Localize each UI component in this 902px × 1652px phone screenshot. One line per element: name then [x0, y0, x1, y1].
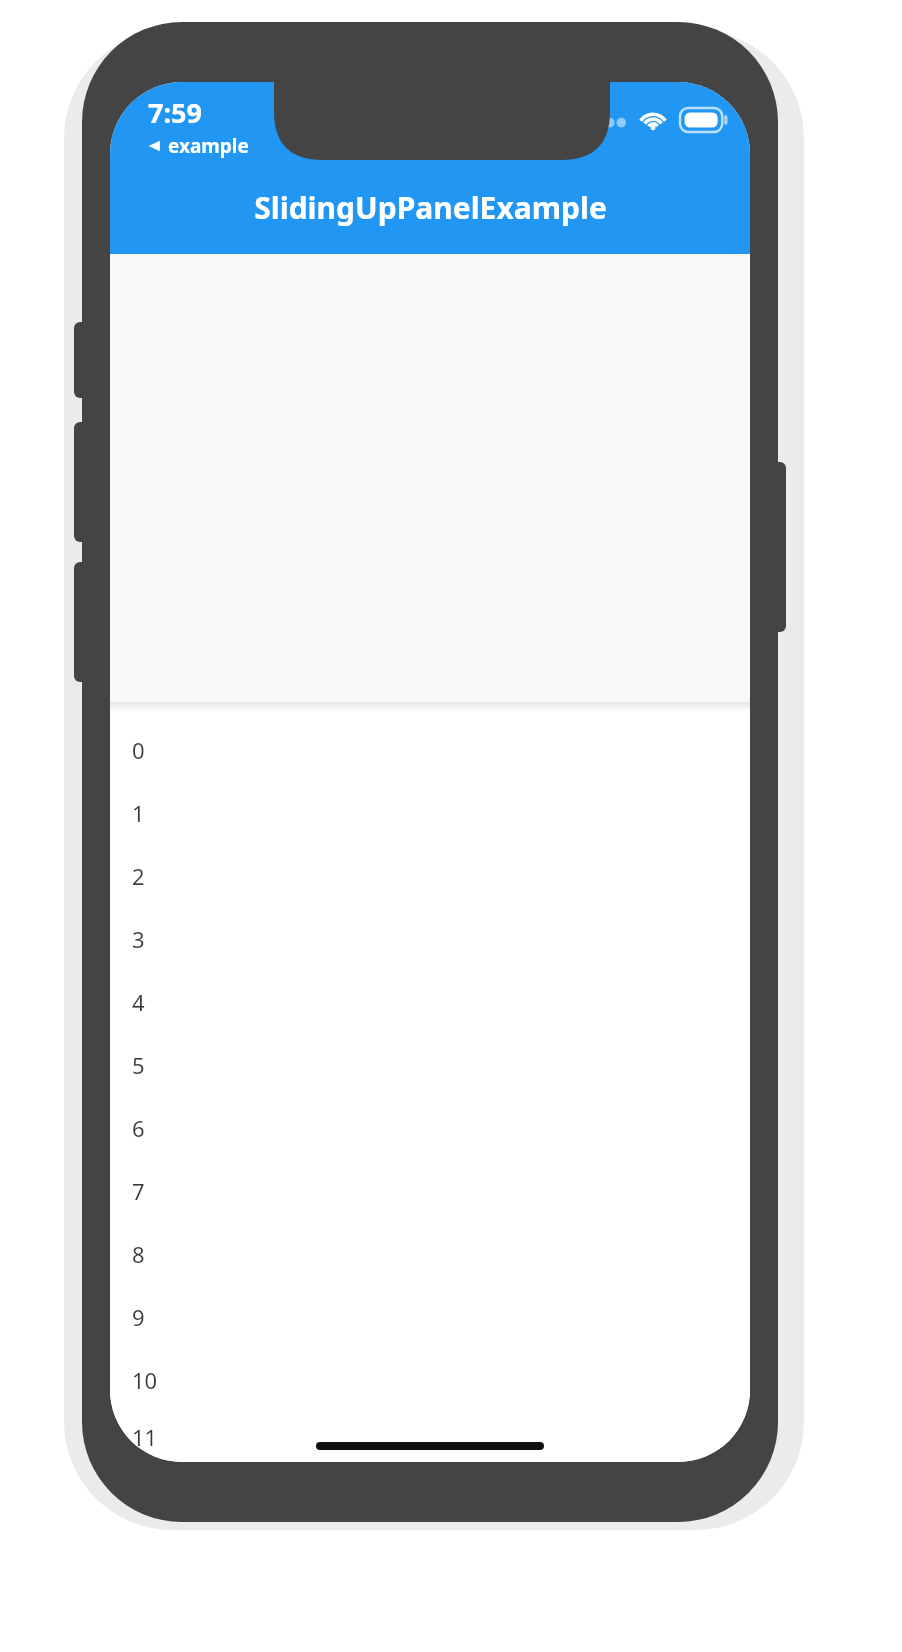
other: Home indicator [316, 1442, 544, 1450]
staticText: 0 [132, 735, 145, 765]
button[interactable]: 7 [110, 1159, 750, 1222]
staticText: 9 [132, 1302, 145, 1332]
staticText: 7:59 [148, 94, 202, 131]
button[interactable]: 6 [110, 1096, 750, 1159]
staticText: 2 [132, 861, 145, 891]
staticText: 8 [132, 1239, 145, 1269]
staticText: 7 [132, 1176, 145, 1206]
button[interactable]: 8 [110, 1222, 750, 1285]
button[interactable]: 2 [110, 844, 750, 907]
button[interactable]: 4 [110, 970, 750, 1033]
staticText: 3 [132, 924, 145, 954]
staticText: 10 [132, 1365, 158, 1395]
staticText: 6 [132, 1113, 145, 1143]
button[interactable]: 9 [110, 1285, 750, 1348]
staticText: 11 [132, 1422, 158, 1452]
staticText: 4 [132, 987, 145, 1017]
button[interactable]: 10 [110, 1348, 750, 1411]
button[interactable]: 0 [110, 718, 750, 781]
staticText: 1 [132, 798, 145, 828]
button[interactable]: 3 [110, 907, 750, 970]
button[interactable]: 11 [110, 1411, 750, 1462]
button[interactable]: 1 [110, 781, 750, 844]
staticText: SlidingUpPanelExample [254, 187, 607, 228]
staticText: example [168, 133, 249, 159]
button[interactable]: 5 [110, 1033, 750, 1096]
staticText: 5 [132, 1050, 145, 1080]
